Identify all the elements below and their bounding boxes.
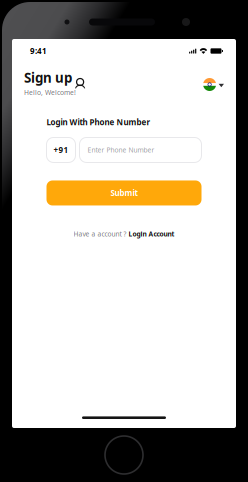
staticText: Login With Phone Number — [46, 117, 150, 127]
staticText: +91 — [53, 145, 68, 155]
staticText: Hello, Welcome! — [24, 88, 76, 97]
staticText: 9:41 — [30, 46, 47, 56]
button[interactable]: Have a account ? — [46, 229, 201, 238]
staticText: Submit — [110, 188, 137, 198]
button[interactable]: Country code +91 — [46, 137, 75, 162]
staticText: Login Account — [128, 229, 174, 238]
button[interactable]: Choose country code — [203, 71, 224, 91]
staticText: Enter Phone Number — [87, 146, 154, 154]
staticText: Sign up — [24, 69, 72, 86]
button[interactable]: Enter Phone Number — [79, 137, 201, 162]
staticText: Have a account ? — [73, 229, 126, 238]
button[interactable]: Submit — [46, 180, 201, 205]
